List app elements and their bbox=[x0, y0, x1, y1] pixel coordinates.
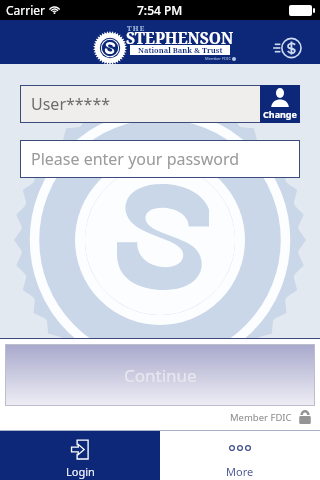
staticText: Continue bbox=[124, 364, 197, 387]
button[interactable]: User***** bbox=[20, 85, 300, 123]
button[interactable]: Please enter your password bbox=[20, 140, 300, 178]
button[interactable]: Login bbox=[0, 431, 160, 480]
staticText: THE bbox=[127, 24, 146, 34]
staticText: 7:54 PM bbox=[137, 2, 183, 18]
staticText: Login bbox=[66, 464, 95, 479]
staticText: More bbox=[226, 464, 254, 479]
staticText: Change bbox=[263, 108, 297, 120]
staticText: National Bank & Trust bbox=[138, 45, 223, 55]
staticText: Member FDIC bbox=[205, 56, 231, 61]
staticText: Member FDIC bbox=[230, 411, 292, 424]
button[interactable]: Change bbox=[260, 85, 300, 123]
staticText: STEPHENSON bbox=[126, 27, 234, 48]
button[interactable]: More bbox=[160, 431, 320, 480]
staticText: User***** bbox=[31, 93, 111, 115]
staticText: Carrier bbox=[6, 2, 46, 18]
button[interactable]: Fast balance bbox=[270, 32, 302, 64]
button[interactable]: Continue bbox=[5, 344, 315, 406]
staticText: Please enter your password bbox=[31, 148, 240, 170]
